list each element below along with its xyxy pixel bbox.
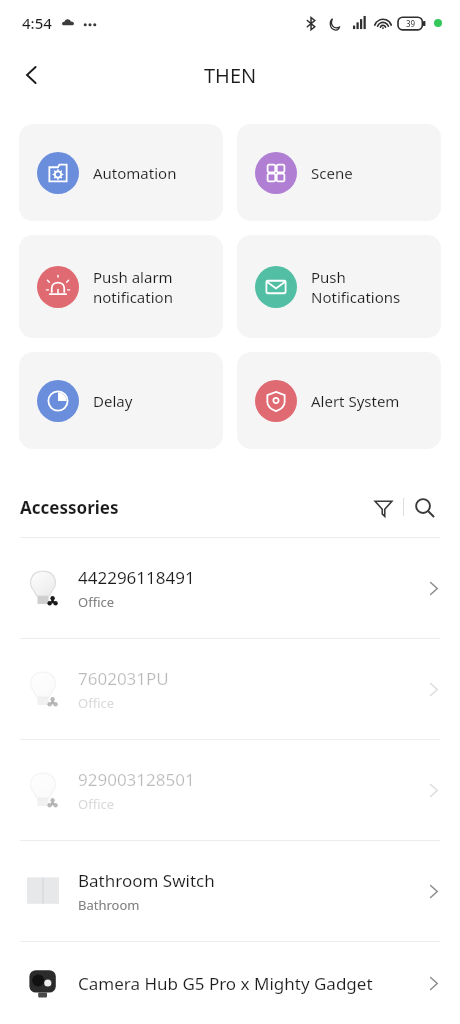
- staticText: 7602031PU: [78, 667, 169, 690]
- button[interactable]: Back: [8, 51, 56, 99]
- button[interactable]: Bathroom Switch: [0, 841, 460, 941]
- button[interactable]: Scene: [237, 124, 441, 221]
- button[interactable]: Automation: [19, 124, 223, 221]
- button[interactable]: Filter: [363, 487, 403, 527]
- staticText: Accessories: [20, 496, 119, 519]
- button[interactable]: 929003128501: [0, 740, 460, 840]
- staticText: Office: [78, 795, 115, 813]
- button[interactable]: Delay: [19, 352, 223, 449]
- staticText: Bathroom Switch: [78, 869, 215, 892]
- button[interactable]: Alert System: [237, 352, 441, 449]
- staticText: Push Notifications: [311, 267, 401, 307]
- staticText: Alert System: [311, 391, 400, 411]
- staticText: Camera Hub G5 Pro x Mighty Gadget: [78, 972, 373, 995]
- staticText: 442296118491: [78, 566, 195, 589]
- button[interactable]: 442296118491: [0, 538, 460, 638]
- staticText: THEN: [204, 62, 257, 89]
- button[interactable]: 7602031PU: [0, 639, 460, 739]
- button[interactable]: Push alarm notification: [19, 235, 223, 338]
- staticText: Office: [78, 593, 115, 611]
- staticText: Automation: [93, 163, 177, 183]
- staticText: 39: [406, 18, 416, 29]
- staticText: Bathroom: [78, 896, 140, 914]
- staticText: 929003128501: [78, 768, 195, 791]
- staticText: Scene: [311, 163, 353, 183]
- button[interactable]: Push Notifications: [237, 235, 441, 338]
- button[interactable]: Search: [404, 487, 444, 527]
- staticText: Office: [78, 694, 115, 712]
- staticText: Push alarm notification: [93, 267, 173, 307]
- staticText: Delay: [93, 391, 133, 411]
- staticText: 4:54: [22, 13, 52, 33]
- button[interactable]: Camera Hub G5 Pro x Mighty Gadget: [0, 942, 460, 1024]
